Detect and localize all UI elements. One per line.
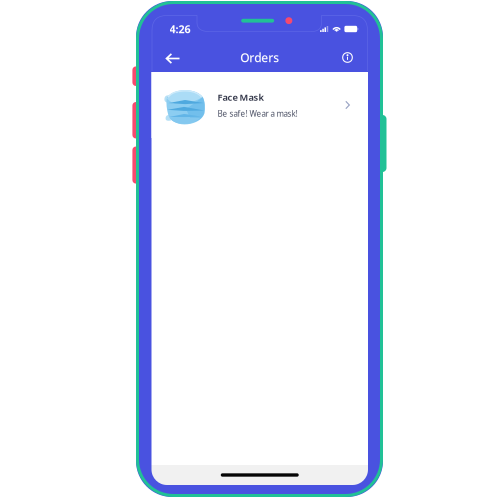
staticText: Be safe! Wear a mask! — [217, 108, 297, 119]
staticText: Face Mask — [217, 91, 263, 103]
staticText: Orders — [240, 49, 279, 65]
button[interactable]: Back — [158, 45, 188, 71]
button[interactable]: Face Mask — [151, 72, 368, 138]
staticText: 4:26 — [169, 22, 190, 36]
button[interactable]: Information — [332, 44, 362, 70]
